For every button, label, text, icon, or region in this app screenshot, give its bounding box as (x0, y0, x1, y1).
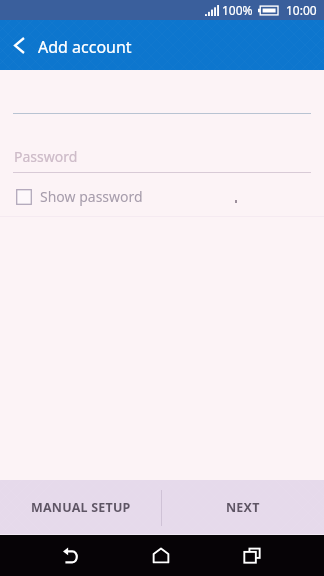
button[interactable]: Show password (0, 187, 324, 206)
staticText: Show password (40, 187, 143, 206)
staticText: Add account (38, 36, 132, 58)
button[interactable]: NEXT (161, 480, 324, 535)
button[interactable]: Recent apps (229, 535, 275, 576)
staticText: 10:00 (286, 2, 317, 18)
staticText: NEXT (226, 499, 260, 516)
button[interactable]: Back (0, 20, 38, 70)
staticText: MANUAL SETUP (31, 499, 131, 516)
button[interactable]: Back (47, 535, 93, 576)
staticText: 100% (222, 2, 253, 18)
staticText: Password (14, 147, 78, 166)
button[interactable]: MANUAL SETUP (0, 480, 161, 535)
button[interactable]: Home (138, 535, 184, 576)
